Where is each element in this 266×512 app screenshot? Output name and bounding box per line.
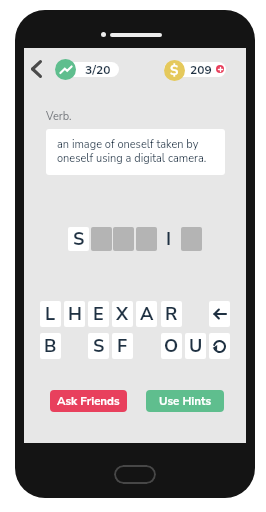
button[interactable]: Home [114,465,156,484]
staticText: I [166,227,172,251]
staticText: X [116,302,129,327]
staticText: 3/20 [85,62,111,77]
button[interactable] [113,227,134,251]
staticText: A [140,302,154,327]
staticText: E [93,302,104,327]
button[interactable]: Use Hints [146,390,224,412]
button[interactable]: F [112,333,133,359]
button[interactable]: Add coins [216,65,224,73]
button[interactable]: Shuffle letters [209,333,230,359]
button[interactable]: Level progress [55,59,76,80]
staticText: S [93,334,105,359]
staticText: O [164,334,179,359]
staticText: $ [170,61,179,80]
button[interactable]: H [64,301,85,327]
button[interactable]: R [161,301,182,327]
staticText: an image of oneself taken by oneself usi… [57,137,209,166]
staticText: F [117,334,128,359]
button[interactable]: S [88,333,109,359]
button[interactable]: Back [22,51,50,87]
button[interactable] [55,62,119,77]
button[interactable]: X [112,301,133,327]
button[interactable]: Ask Friends [50,390,127,412]
staticText: L [45,302,56,327]
button[interactable] [136,227,157,251]
button[interactable] [164,62,226,77]
button[interactable] [91,227,112,251]
button[interactable]: A [136,301,157,327]
button[interactable]: E [88,301,109,327]
staticText: 209 [190,62,212,77]
button[interactable]: B [40,333,61,359]
staticText: U [189,334,203,359]
staticText: R [165,302,178,327]
staticText: Verb. [46,109,72,124]
staticText: S [73,227,85,251]
button[interactable]: L [40,301,61,327]
staticText: B [44,334,57,359]
staticText: Ask Friends [57,393,120,409]
button[interactable] [181,227,202,251]
staticText: H [68,302,82,327]
button[interactable]: S [68,227,89,251]
button[interactable]: Backspace [209,301,230,327]
button[interactable]: U [185,333,206,359]
staticText: Use Hints [159,393,212,409]
button[interactable]: O [161,333,182,359]
